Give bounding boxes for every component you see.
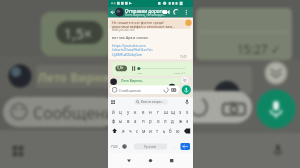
staticText: , (119, 144, 121, 150)
button[interactable]: Scroll to bottom (180, 67, 190, 77)
staticText: б (169, 128, 172, 134)
staticText: 13:01 (180, 55, 187, 59)
button[interactable]: Record voice message (182, 85, 191, 94)
staticText: Русский (144, 145, 156, 149)
staticText: Сообщени (33, 102, 115, 124)
staticText: р (149, 118, 152, 124)
staticText: х (186, 109, 189, 115)
staticText: а (134, 118, 137, 124)
staticText: э (186, 118, 189, 124)
staticText: 1,5× (117, 66, 124, 70)
staticText: 1:05 (137, 71, 142, 74)
staticText: Uj4MFu4Ok4q0cm (112, 52, 143, 57)
staticText: ю (176, 128, 180, 134)
staticText: ь (163, 128, 166, 134)
staticText: г (157, 109, 159, 115)
staticText: ч (129, 128, 132, 134)
button[interactable]: Enter (181, 143, 191, 150)
staticText: к (134, 109, 137, 115)
staticText: Лето Вирнец (121, 78, 143, 83)
staticText: з (179, 109, 182, 115)
staticText: ф (112, 118, 116, 124)
button[interactable]: Back (109, 8, 117, 16)
staticText: Сообщение (119, 88, 142, 93)
staticText: о (157, 118, 160, 124)
staticText: п (142, 118, 145, 124)
staticText: вот как Арам сказал (112, 35, 148, 40)
staticText: щ (171, 109, 175, 115)
button[interactable] (110, 86, 180, 94)
button[interactable]: Voice call (174, 8, 184, 18)
staticText: Лето Вирнец, нетальяди... (125, 13, 166, 17)
staticText: у (127, 109, 130, 115)
staticText: т (156, 128, 159, 134)
staticText: ?123 (111, 145, 118, 149)
button[interactable]: Video call (163, 8, 173, 18)
staticText: д (171, 118, 174, 124)
staticText: Не пишите в чат фигню среди! (112, 20, 164, 25)
staticText: в (127, 118, 130, 124)
button[interactable] (115, 8, 159, 18)
staticText: 15:27 ✓✓ (174, 71, 186, 74)
staticText: м (142, 128, 146, 134)
staticText: е (142, 109, 145, 115)
staticText: ы (119, 118, 123, 124)
button[interactable] (112, 62, 192, 76)
staticText: л (164, 118, 167, 124)
staticText: 1,5× (64, 24, 92, 43)
button[interactable]: More options (183, 8, 192, 17)
staticText: й (112, 109, 115, 115)
staticText: Лето Вирни (38, 69, 110, 85)
staticText: Ввести запрос... (141, 100, 165, 104)
staticText: я (122, 128, 125, 134)
staticText: и (149, 128, 152, 134)
staticText: н (149, 109, 152, 115)
button[interactable] (119, 78, 181, 88)
staticText: ц (119, 109, 122, 115)
button[interactable] (109, 18, 193, 59)
staticText: дорогими вайфай и отключает вам... (112, 24, 175, 29)
button[interactable]: Recent apps (166, 155, 178, 167)
staticText: ш (164, 109, 168, 115)
staticText: Отправки дорогие (125, 8, 168, 14)
staticText: /shorts/OvaaF6aHLss?si= (112, 47, 154, 52)
staticText: www.youtube.com (112, 28, 135, 32)
staticText: ж (179, 118, 183, 124)
button[interactable]: Back (123, 155, 135, 167)
staticText: https://youtube.com (112, 43, 146, 48)
staticText: . (174, 144, 176, 150)
button[interactable]: Home (145, 155, 157, 167)
staticText: с (136, 128, 139, 134)
staticText: 15:27 ✓ (237, 41, 281, 57)
